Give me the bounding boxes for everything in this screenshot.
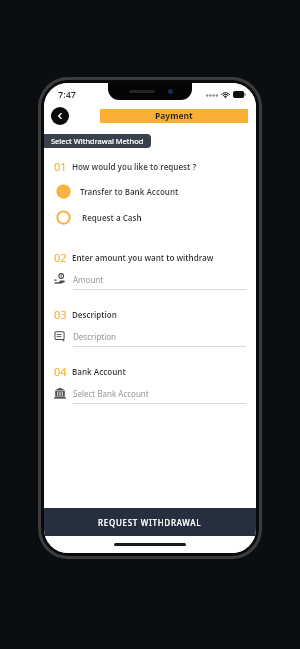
staticText: Request a Cash xyxy=(82,212,142,223)
staticText: 7:47 xyxy=(58,88,76,100)
button[interactable]: Back xyxy=(51,107,69,125)
button[interactable]: Description xyxy=(54,328,246,344)
button[interactable]: Select Bank Account xyxy=(54,385,246,401)
button[interactable]: Request a Cash xyxy=(56,207,248,228)
staticText: Description xyxy=(72,309,117,320)
staticText: How would you like to request ? xyxy=(72,161,197,172)
staticText: Amount xyxy=(73,274,104,285)
staticText: Enter amount you want to withdraw xyxy=(72,252,214,263)
staticText: Description xyxy=(73,331,117,342)
staticText: Bank Account xyxy=(72,366,126,377)
staticText: 03 xyxy=(54,307,67,322)
staticText: Select Bank Account xyxy=(73,388,149,399)
staticText: REQUEST WITHDRAWAL xyxy=(98,517,202,528)
button[interactable]: Transfer to Bank Account xyxy=(56,181,248,202)
staticText: 02 xyxy=(54,250,67,265)
button[interactable]: Amount xyxy=(54,271,246,287)
button[interactable]: REQUEST WITHDRAWAL xyxy=(44,508,256,536)
button[interactable]: Payment xyxy=(100,109,248,123)
staticText: 04 xyxy=(54,364,67,379)
staticText: Payment xyxy=(155,110,193,122)
staticText: Select Withdrawal Method xyxy=(51,136,144,146)
staticText: 01 xyxy=(54,159,67,174)
staticText: Transfer to Bank Account xyxy=(80,186,179,197)
